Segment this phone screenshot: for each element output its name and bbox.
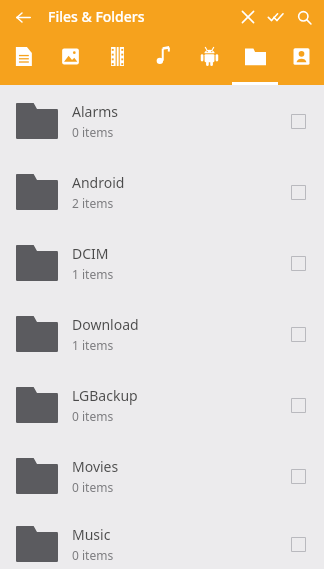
staticText: LGBackup <box>72 386 138 405</box>
staticText: 1 items <box>72 266 114 282</box>
button[interactable]: Select Alarms <box>278 101 318 141</box>
button[interactable]: Images <box>47 33 94 85</box>
button[interactable]: Videos <box>94 33 140 85</box>
button[interactable]: Select all <box>262 3 290 31</box>
staticText: 0 items <box>72 547 114 563</box>
staticText: 1 items <box>72 337 114 353</box>
button[interactable]: Contacts <box>278 33 324 85</box>
button[interactable]: Download <box>0 298 324 369</box>
staticText: Movies <box>72 457 119 476</box>
button[interactable]: Alarms <box>0 85 324 156</box>
button[interactable]: Select Android <box>278 172 318 212</box>
staticText: Files & Folders <box>48 7 145 26</box>
button[interactable]: Select LGBackup <box>278 385 318 425</box>
button[interactable]: Back <box>10 4 36 30</box>
button[interactable]: Android <box>0 156 324 227</box>
button[interactable]: Select Download <box>278 314 318 354</box>
staticText: 0 items <box>72 124 114 140</box>
staticText: Alarms <box>72 102 118 121</box>
staticText: 0 items <box>72 479 114 495</box>
button[interactable]: Search <box>290 3 318 31</box>
button[interactable]: Select Music <box>278 524 318 564</box>
button[interactable]: Audio <box>140 33 186 85</box>
staticText: Android <box>72 173 125 192</box>
button[interactable]: Folders <box>232 33 278 85</box>
staticText: 2 items <box>72 195 114 211</box>
staticText: DCIM <box>72 244 109 263</box>
button[interactable]: Close <box>234 3 262 31</box>
button[interactable]: Select Movies <box>278 456 318 496</box>
button[interactable]: Music <box>0 511 324 576</box>
button[interactable]: Apps <box>186 33 232 85</box>
staticText: Music <box>72 525 111 544</box>
staticText: Download <box>72 315 139 334</box>
button[interactable]: Select DCIM <box>278 243 318 283</box>
button[interactable]: Movies <box>0 440 324 511</box>
staticText: 0 items <box>72 408 114 424</box>
button[interactable]: DCIM <box>0 227 324 298</box>
button[interactable]: Documents <box>0 33 47 85</box>
button[interactable]: LGBackup <box>0 369 324 440</box>
